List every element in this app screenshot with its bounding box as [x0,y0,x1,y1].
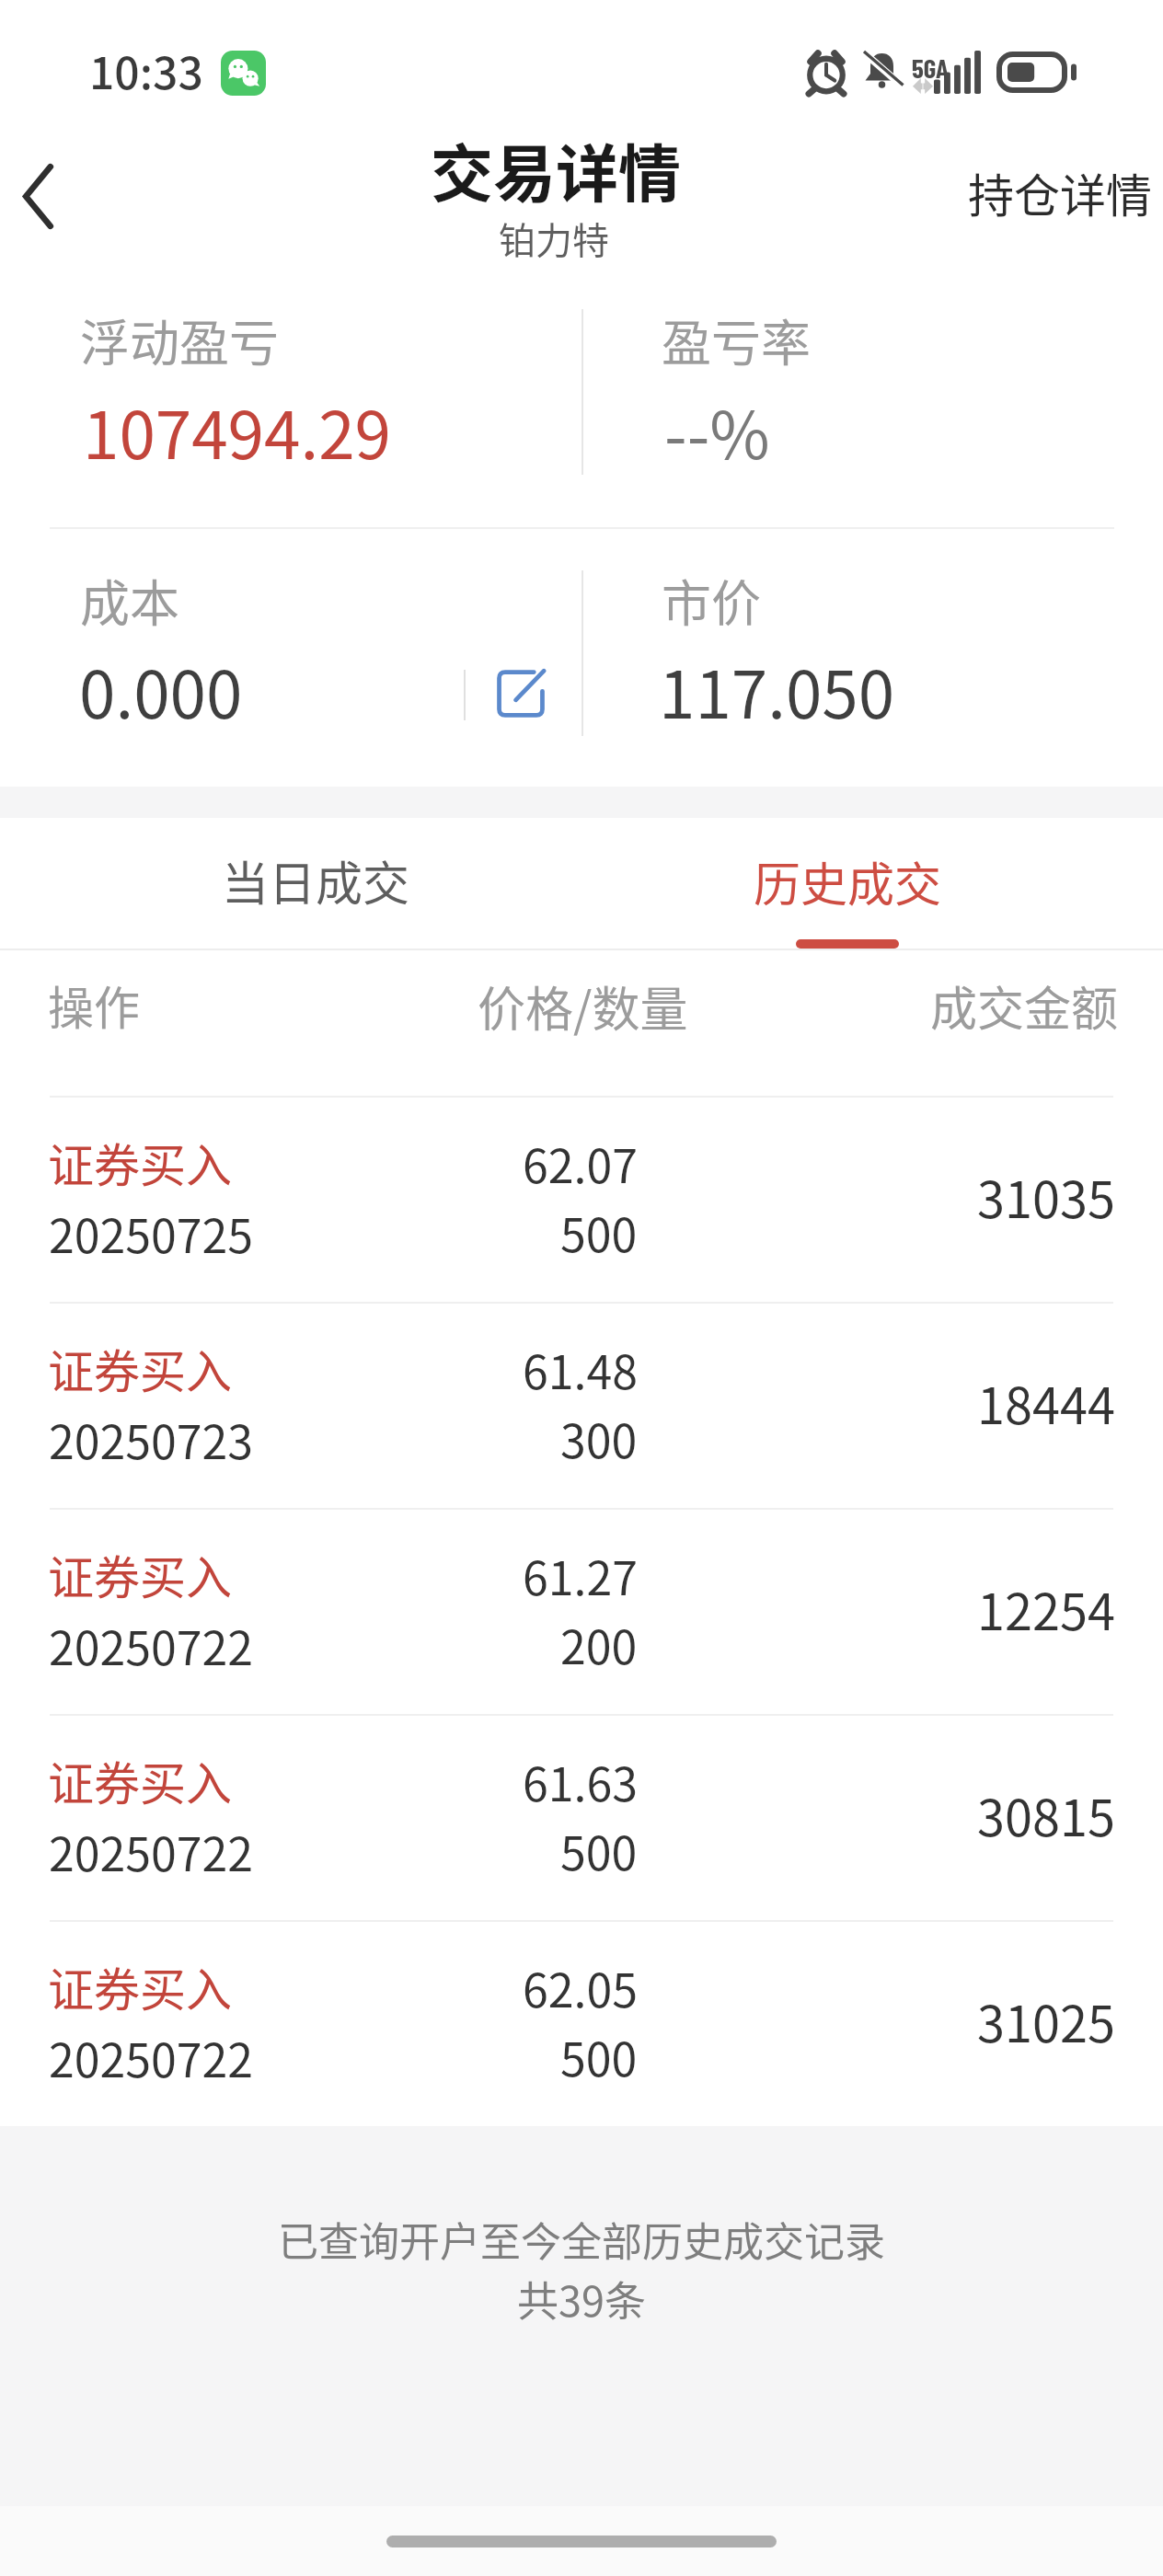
button[interactable]: 历史成交 [668,818,1027,949]
button[interactable]: 证券买入 [0,1920,1163,2126]
staticText: 500 [560,1817,638,1883]
staticText: 证券买入 [48,1747,232,1813]
staticText: 当日成交 [222,846,410,914]
staticText: 117.050 [659,643,895,738]
staticText: 31025 [977,1984,1115,2056]
button[interactable]: Back [0,145,103,248]
staticText: 成交金额 [930,972,1119,1040]
staticText: 10:33 [89,38,203,102]
staticText: 20250725 [49,1200,253,1266]
staticText: 500 [560,2023,638,2089]
staticText: 已查询开户至今全部历史成交记录 [278,2210,885,2269]
staticText: 证券买入 [48,1335,232,1401]
staticText: 30815 [977,1778,1115,1850]
staticText: 300 [560,1405,638,1471]
staticText: 证券买入 [48,1953,232,2019]
button[interactable]: 证券买入 [0,1714,1163,1920]
staticText: 62.05 [523,1954,638,2020]
staticText: 20250722 [49,1612,253,1678]
staticText: 操作 [48,972,140,1038]
staticText: 成本 [80,564,179,636]
staticText: 61.27 [523,1542,638,1608]
staticText: 浮动盈亏 [80,304,279,375]
button[interactable]: Edit cost price [477,650,565,738]
button[interactable]: 证券买入 [0,1096,1163,1302]
staticText: 200 [560,1611,638,1677]
staticText: 证券买入 [48,1129,232,1195]
staticText: 31035 [977,1160,1115,1232]
staticText: 0.000 [79,643,243,738]
button[interactable]: 证券买入 [0,1508,1163,1714]
staticText: 500 [560,1199,638,1265]
button[interactable]: 持仓详情 [951,143,1163,242]
staticText: 5GA [912,52,949,84]
staticText: 交易详情 [431,124,682,214]
staticText: 61.48 [523,1336,638,1402]
staticText: 价格/数量 [478,972,688,1041]
staticText: 共39条 [517,2269,646,2329]
staticText: 市价 [662,564,761,636]
staticText: 62.07 [523,1130,638,1196]
staticText: 铂力特 [499,212,609,265]
staticText: 18444 [977,1366,1115,1438]
staticText: --% [664,384,770,478]
staticText: 61.63 [523,1748,638,1814]
staticText: 12254 [977,1572,1115,1644]
button[interactable]: 当日成交 [136,818,495,949]
staticText: 盈亏率 [662,304,811,375]
staticText: 持仓详情 [968,159,1152,225]
staticText: 20250723 [49,1406,253,1472]
staticText: 20250722 [49,2024,253,2090]
staticText: 证券买入 [48,1541,232,1607]
staticText: 历史成交 [754,847,942,915]
button[interactable]: 证券买入 [0,1302,1163,1508]
staticText: 20250722 [49,1818,253,1884]
staticText: 107494.29 [83,384,391,478]
